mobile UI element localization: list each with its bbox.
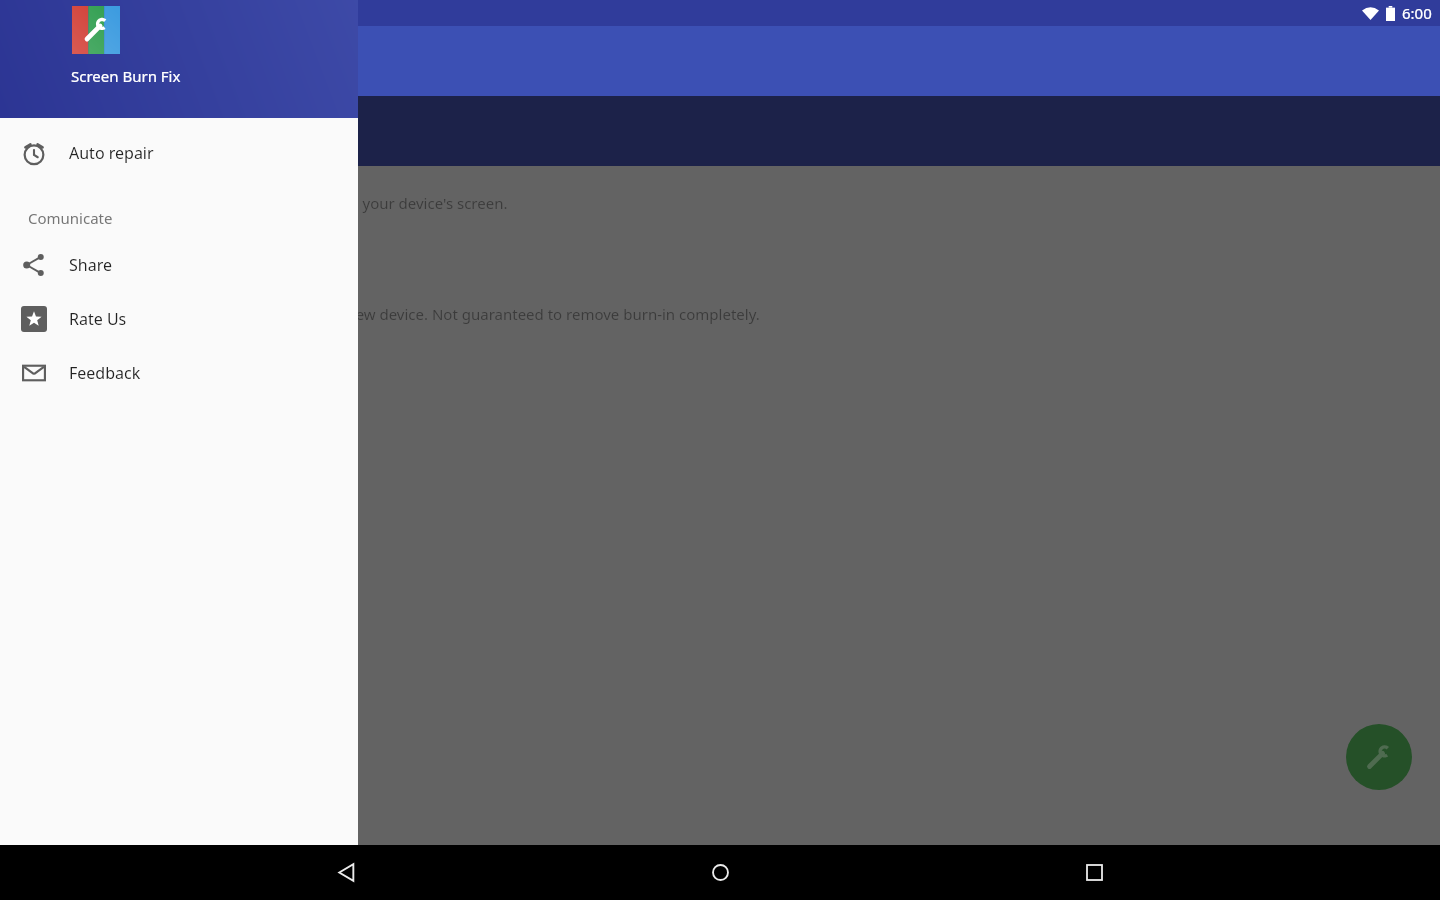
button[interactable]: Rate Us <box>0 292 358 346</box>
staticText: 6:00 <box>1402 3 1432 23</box>
staticText: This app helps remove burned in patterns… <box>26 193 508 213</box>
button[interactable]: Home <box>692 845 748 900</box>
staticText: Share <box>69 254 112 276</box>
staticText: For best results, connect to your charge… <box>26 267 314 287</box>
button[interactable]: Back <box>318 845 374 900</box>
staticText: Feedback <box>69 362 141 384</box>
button[interactable]: Screen Burn Fix <box>0 0 358 118</box>
staticText: Comunicate <box>28 208 113 228</box>
button[interactable]: Recent apps <box>1066 845 1122 900</box>
staticText: Rate Us <box>69 308 127 330</box>
staticText: Auto repair <box>69 142 154 164</box>
staticText: Screen Burn Fix <box>71 66 181 86</box>
staticText: Screen Burn Fix <box>26 47 182 76</box>
button[interactable]: Start repair <box>1346 724 1412 790</box>
staticText: This app works best when used relularly … <box>26 304 760 324</box>
button[interactable]: Share <box>0 238 358 292</box>
button[interactable]: Auto repair <box>0 126 358 180</box>
button[interactable]: Feedback <box>0 346 358 400</box>
